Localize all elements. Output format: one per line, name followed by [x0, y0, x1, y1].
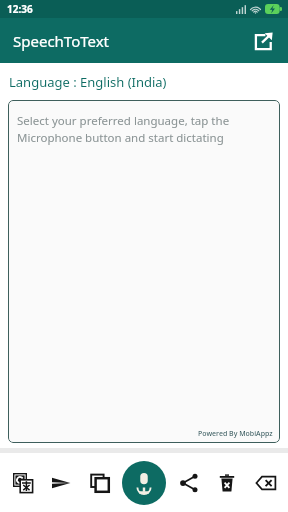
staticText: 12:36: [7, 2, 33, 16]
button[interactable]: Microphone: [122, 461, 166, 505]
button[interactable]: Language : English (India): [0, 63, 288, 100]
staticText: Language : English (India): [9, 73, 167, 91]
button[interactable]: Delete: [211, 467, 243, 499]
button[interactable]: Translate: [7, 467, 39, 499]
button[interactable]: Share: [173, 467, 205, 499]
button[interactable]: Copy: [84, 467, 116, 499]
button[interactable]: Export: [248, 26, 278, 56]
staticText: Select your preferred language, tap the …: [17, 113, 230, 145]
staticText: Powered By MobiAppz: [198, 429, 273, 439]
staticText: SpeechToText: [13, 31, 110, 51]
button[interactable]: Backspace: [250, 467, 282, 499]
button[interactable]: Send: [45, 467, 77, 499]
button[interactable]: Select your preferred language, tap the …: [8, 100, 280, 443]
